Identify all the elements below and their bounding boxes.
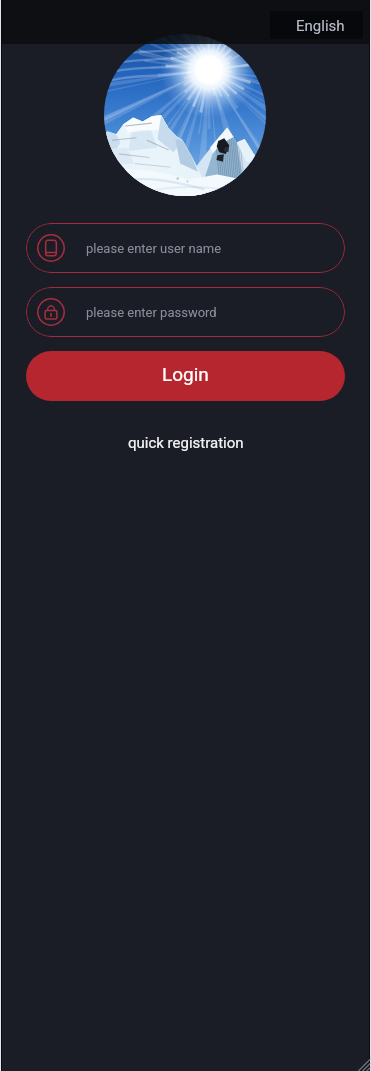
button[interactable]: please enter user name: [26, 223, 345, 273]
button[interactable]: quick registration: [118, 430, 254, 456]
staticText: English: [296, 17, 345, 35]
staticText: please enter user name: [86, 241, 222, 256]
staticText: please enter password: [86, 305, 217, 320]
staticText: Login: [162, 363, 209, 385]
other: App logo: [104, 34, 266, 196]
button[interactable]: English: [270, 11, 363, 39]
button[interactable]: please enter password: [26, 287, 345, 337]
button[interactable]: Login: [26, 351, 345, 401]
